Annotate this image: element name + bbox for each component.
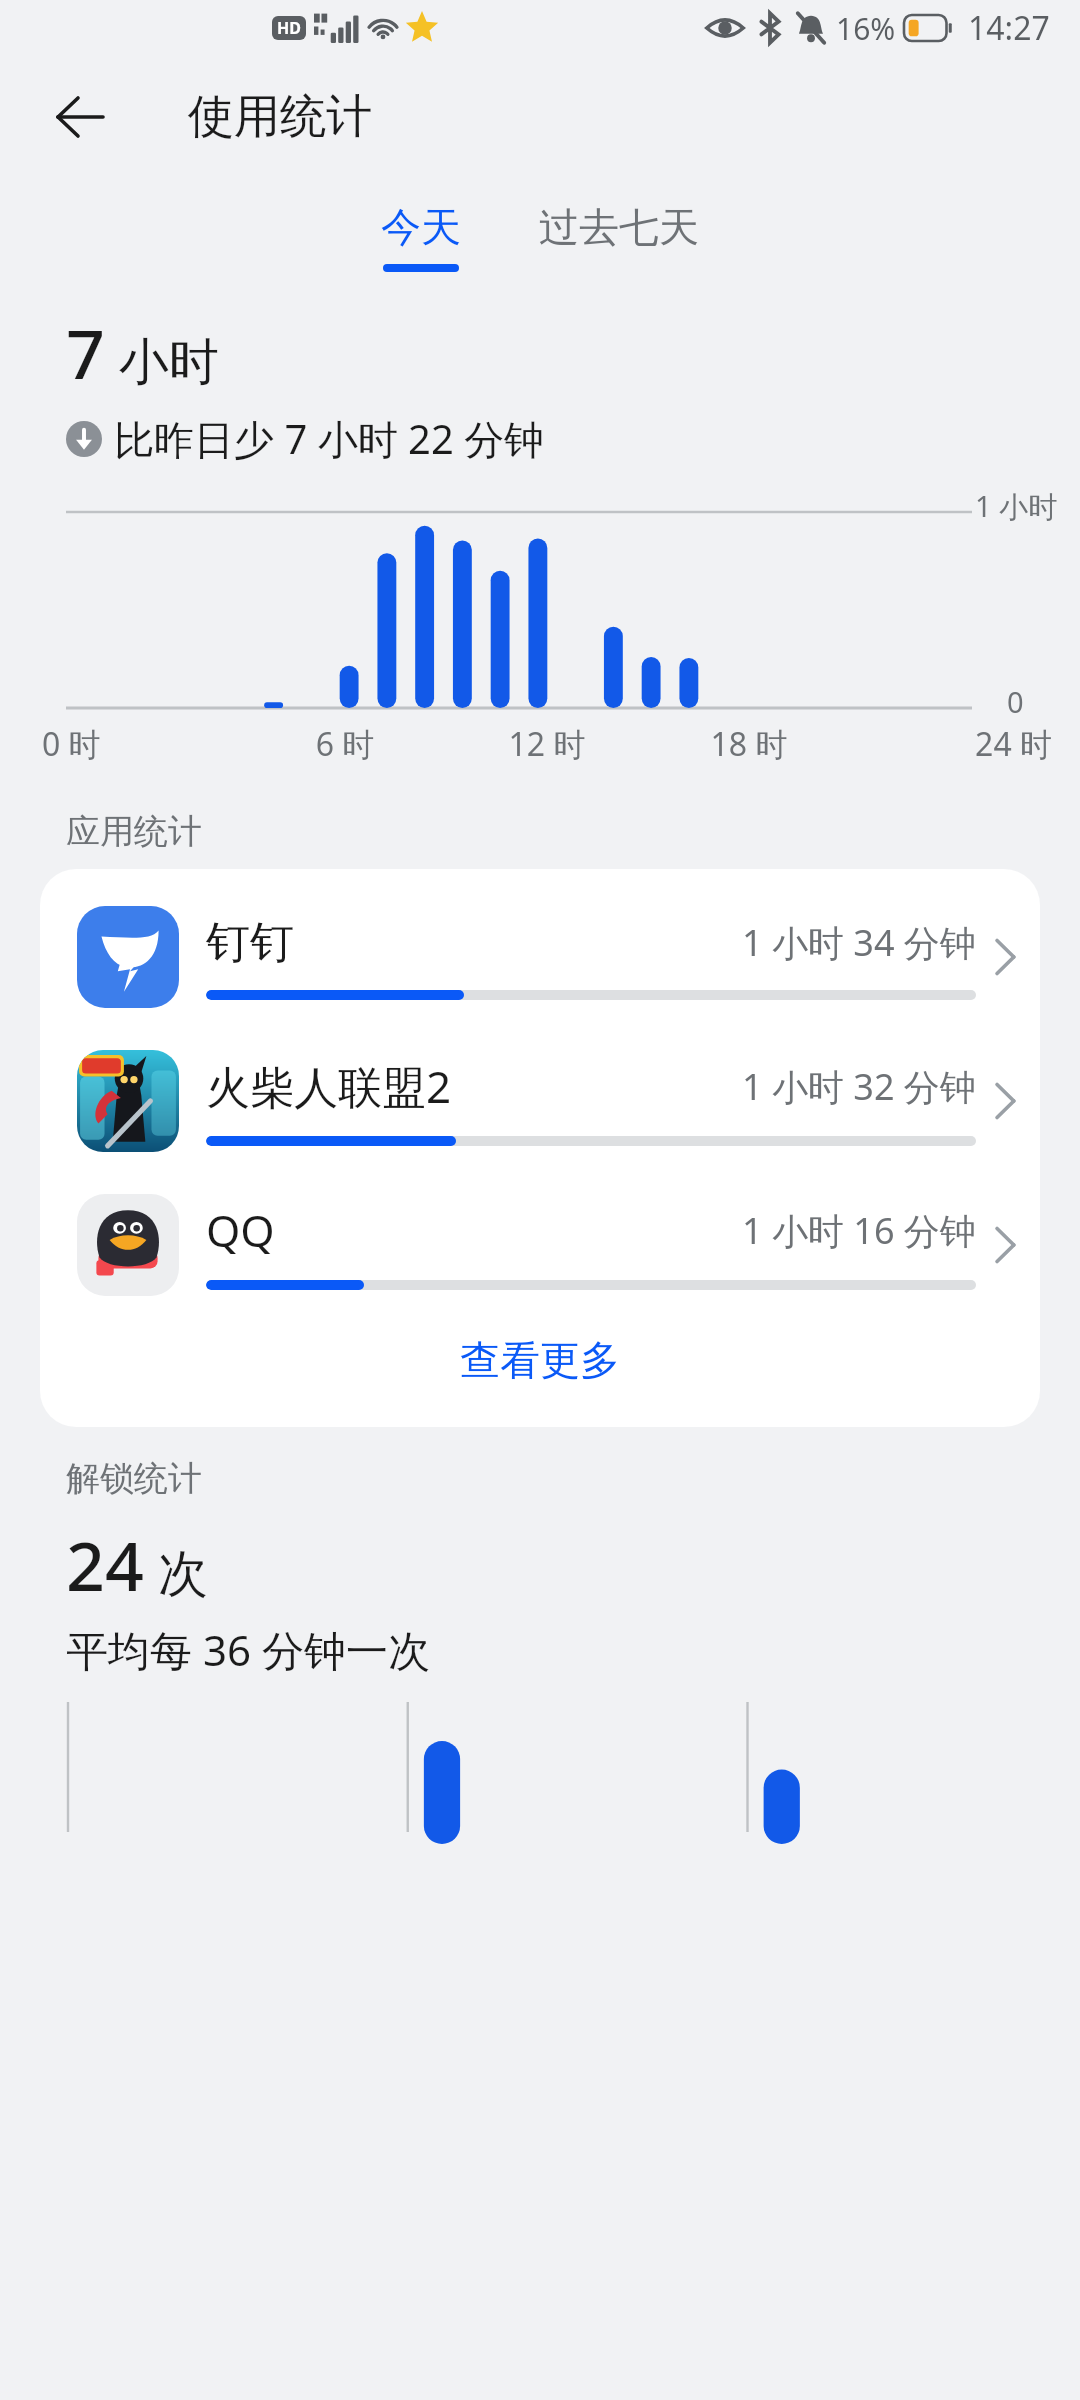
staticText: 1 小时 <box>975 486 1058 526</box>
staticText: 火柴人联盟2 <box>206 1056 452 1116</box>
staticText: 24 <box>66 1518 144 1611</box>
staticText: HD <box>277 17 301 39</box>
staticText: 16% <box>836 8 896 49</box>
button[interactable]: 返回 <box>40 77 120 157</box>
staticText: 解锁统计 <box>66 1457 202 1500</box>
staticText: 6 时 <box>244 722 446 766</box>
button[interactable]: 今天 <box>371 198 471 276</box>
staticText: 14:27 <box>968 6 1050 50</box>
button[interactable]: QQ <box>40 1173 1040 1317</box>
staticText: 比昨日少 7 小时 22 分钟 <box>114 411 545 466</box>
staticText: 0 <box>1007 682 1024 721</box>
staticText: 1 小时 16 分钟 <box>742 1206 976 1255</box>
button[interactable]: 火柴人联盟2 <box>40 1029 1040 1173</box>
staticText: 今天 <box>381 202 461 252</box>
staticText: QQ <box>206 1200 275 1260</box>
staticText: 次 <box>158 1543 208 1606</box>
staticText: 应用统计 <box>66 810 202 853</box>
staticText: 钉钉 <box>206 915 294 970</box>
staticText: 过去七天 <box>539 202 699 252</box>
button[interactable]: 查看更多 <box>40 1317 1040 1423</box>
staticText: 小时 <box>119 331 219 394</box>
staticText: 1 小时 34 分钟 <box>742 918 976 967</box>
staticText: 1 小时 32 分钟 <box>742 1062 976 1111</box>
button[interactable]: 钉钉 <box>40 885 1040 1029</box>
staticText: 使用统计 <box>188 88 372 146</box>
staticText: 平均每 36 分钟一次 <box>66 1621 430 1678</box>
staticText: 12 时 <box>446 722 648 766</box>
staticText: 7 <box>66 306 105 399</box>
staticText: 0 时 <box>42 722 244 766</box>
staticText: 18 时 <box>648 722 850 766</box>
button[interactable]: 过去七天 <box>529 198 709 276</box>
staticText: 24 时 <box>850 722 1052 766</box>
staticText: 查看更多 <box>460 1335 620 1385</box>
